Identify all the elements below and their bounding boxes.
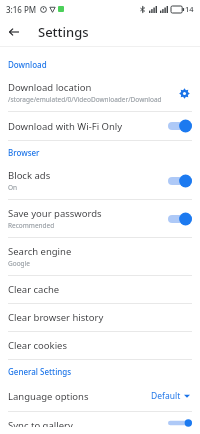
button[interactable]: Toggle: [168, 212, 192, 226]
button[interactable]: Download location settings: [176, 85, 192, 101]
staticText: Sync to gallery: [8, 419, 73, 427]
staticText: Language options: [8, 390, 89, 403]
staticText: Search engine: [8, 245, 72, 258]
staticText: General Settings: [8, 366, 72, 377]
button[interactable]: Toggle: [168, 174, 192, 188]
staticText: On: [8, 183, 18, 192]
staticText: 3:16 PM: [6, 4, 37, 15]
staticText: Google: [8, 259, 30, 268]
button[interactable]: Clear browser history: [0, 304, 200, 331]
button[interactable]: Clear cache: [0, 276, 200, 303]
button[interactable]: Sync to gallery: [0, 412, 200, 434]
button[interactable]: Download location: [0, 74, 200, 111]
staticText: Clear cache: [8, 283, 60, 296]
staticText: Clear browser history: [8, 311, 104, 324]
staticText: Save your passwords: [8, 207, 102, 220]
button[interactable]: Back: [0, 18, 28, 46]
staticText: Block ads: [8, 169, 51, 182]
button[interactable]: Toggle: [168, 119, 192, 133]
staticText: Download: [8, 59, 47, 70]
staticText: Download location: [8, 81, 92, 94]
staticText: Recommended: [8, 221, 55, 230]
staticText: Download with Wi-Fi Only: [8, 120, 123, 133]
staticText: Settings: [38, 23, 89, 41]
staticText: Clear cookies: [8, 339, 68, 352]
staticText: Browser: [8, 147, 40, 158]
button[interactable]: Save your passwords: [0, 200, 200, 237]
button[interactable]: Block ads: [0, 162, 200, 199]
button[interactable]: Search engine: [0, 238, 200, 275]
button[interactable]: Language options: [0, 381, 200, 411]
button[interactable]: Toggle: [168, 419, 192, 427]
button[interactable]: Clear cookies: [0, 332, 200, 359]
staticText: /storage/emulated/0/VideoDownloader/Down…: [8, 95, 162, 104]
button[interactable]: Default: [149, 388, 192, 404]
button[interactable]: Download with Wi-Fi Only: [0, 112, 200, 140]
staticText: Default: [151, 390, 181, 402]
staticText: 14: [185, 4, 194, 14]
